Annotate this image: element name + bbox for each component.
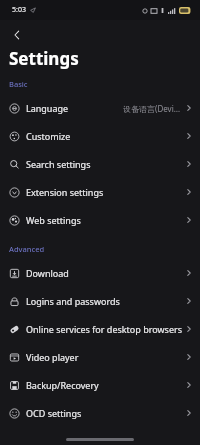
staticText: 设备语言(Devi… — [123, 103, 181, 114]
button[interactable]: Backup/Recovery — [0, 371, 200, 399]
staticText: Download — [26, 267, 69, 279]
staticText: Search settings — [26, 158, 91, 170]
staticText: Online services for desktop browsers — [26, 323, 182, 335]
button[interactable]: Download — [0, 259, 200, 287]
button[interactable]: Back — [6, 24, 28, 46]
button[interactable]: Online services for desktop browsers — [0, 315, 200, 343]
button[interactable]: Web settings — [0, 206, 200, 234]
staticText: Advanced — [9, 244, 45, 254]
staticText: 5:03 — [12, 5, 26, 15]
staticText: Basic — [9, 79, 28, 89]
button[interactable]: Language — [0, 94, 200, 122]
staticText: Video player — [26, 351, 79, 363]
button[interactable]: Video player — [0, 343, 200, 371]
button[interactable]: Customize — [0, 122, 200, 150]
button[interactable]: Logins and passwords — [0, 287, 200, 315]
staticText: Settings — [9, 47, 79, 70]
staticText: OCD settings — [26, 407, 82, 419]
staticText: Language — [26, 102, 69, 114]
staticText: Web settings — [26, 214, 81, 226]
button[interactable]: Search settings — [0, 150, 200, 178]
button[interactable]: OCD settings — [0, 399, 200, 427]
staticText: Customize — [26, 130, 71, 142]
staticText: Backup/Recovery — [26, 379, 99, 391]
button[interactable]: Extension settings — [0, 178, 200, 206]
staticText: Logins and passwords — [26, 295, 120, 307]
staticText: Extension settings — [26, 186, 104, 198]
